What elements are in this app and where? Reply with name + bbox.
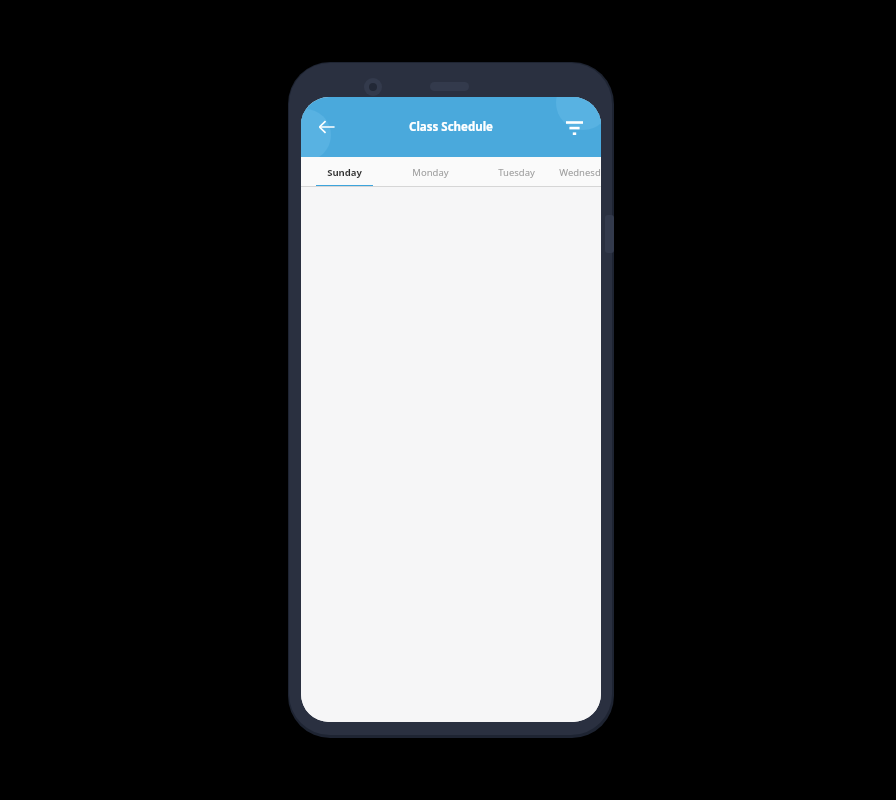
button[interactable]: Monday: [387, 157, 473, 187]
button[interactable]: Back: [309, 109, 345, 145]
staticText: Monday: [412, 166, 449, 179]
button[interactable]: Filter: [557, 110, 591, 144]
button[interactable]: Sunday: [301, 157, 387, 187]
staticText: Tuesday: [498, 166, 535, 179]
staticText: Wednesday: [559, 166, 601, 179]
staticText: Class Schedule: [409, 119, 493, 135]
button[interactable]: Tuesday: [473, 157, 559, 187]
staticText: Sunday: [327, 166, 362, 179]
button[interactable]: Wednesday: [559, 157, 601, 187]
